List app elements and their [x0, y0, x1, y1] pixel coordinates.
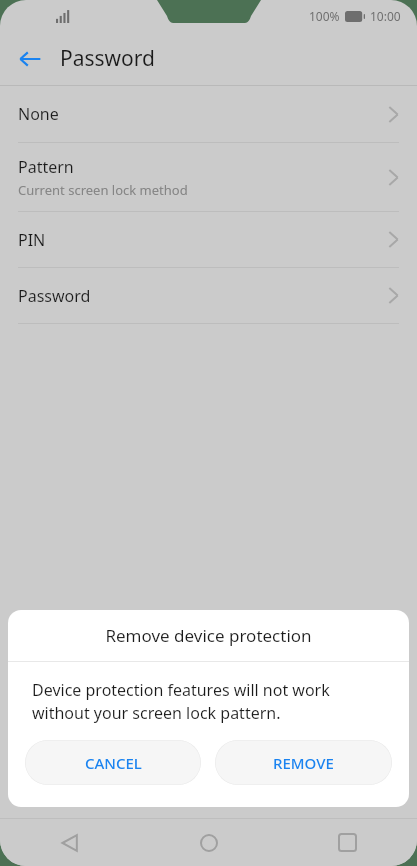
button[interactable]: Recents: [278, 819, 417, 866]
staticText: 10:00: [370, 8, 401, 24]
button[interactable]: Back: [8, 37, 52, 81]
button[interactable]: None: [0, 86, 417, 142]
button[interactable]: PIN: [0, 212, 417, 267]
staticText: REMOVE: [273, 753, 334, 773]
button[interactable]: Password: [0, 268, 417, 323]
button[interactable]: Home: [139, 819, 278, 866]
button[interactable]: REMOVE: [215, 740, 392, 785]
staticText: Remove device protection: [105, 624, 312, 647]
staticText: 100%: [309, 8, 340, 24]
staticText: Pattern: [18, 156, 74, 178]
staticText: Password: [60, 44, 155, 73]
staticText: PIN: [18, 229, 46, 251]
staticText: None: [18, 103, 59, 125]
staticText: Current screen lock method: [18, 181, 188, 199]
button[interactable]: Back: [0, 819, 139, 866]
button[interactable]: Pattern: [0, 143, 417, 211]
staticText: Password: [18, 285, 91, 307]
staticText: CANCEL: [85, 753, 142, 773]
button[interactable]: CANCEL: [25, 740, 201, 785]
staticText: Device protection features will not work…: [32, 679, 385, 724]
